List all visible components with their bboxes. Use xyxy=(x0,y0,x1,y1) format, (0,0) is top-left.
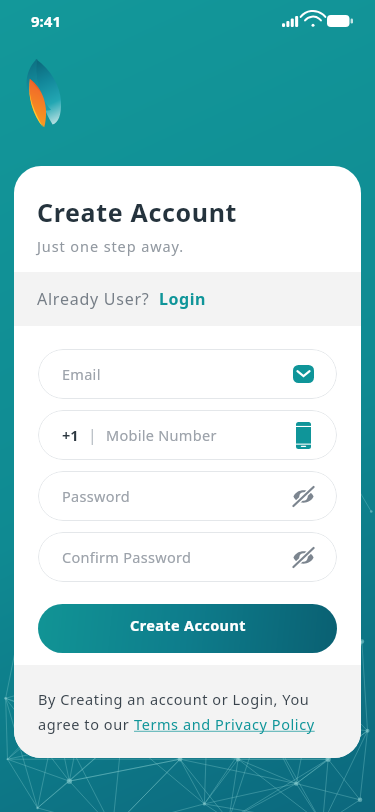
staticText: Email xyxy=(62,364,101,384)
staticText: Just one step away. xyxy=(37,236,185,256)
button[interactable]: Toggle password visibility xyxy=(293,487,314,506)
button[interactable]: Already User? xyxy=(14,272,361,326)
button[interactable]: Toggle password visibility xyxy=(293,548,314,567)
button[interactable]: Terms and Privacy Policy xyxy=(134,714,315,734)
button[interactable]: Mobile number xyxy=(296,422,311,449)
staticText: Create Account xyxy=(37,195,238,229)
staticText: 9:41 xyxy=(31,11,61,31)
staticText: Password xyxy=(62,486,130,506)
staticText: Create Account xyxy=(130,615,246,635)
staticText: +1 xyxy=(62,425,79,445)
staticText: | xyxy=(88,424,97,446)
button[interactable]: +1 xyxy=(38,410,337,460)
button[interactable]: Confirm Password xyxy=(38,532,337,582)
button[interactable]: Password xyxy=(38,471,337,521)
staticText: agree to our xyxy=(38,714,134,734)
staticText: Login xyxy=(159,288,207,310)
button[interactable]: Email xyxy=(38,349,337,399)
staticText: Confirm Password xyxy=(62,547,192,567)
button[interactable]: Email xyxy=(293,365,314,383)
staticText: By Creating an account or Login, You xyxy=(38,689,310,709)
staticText: Mobile Number xyxy=(106,425,217,445)
button[interactable]: Create Account xyxy=(38,604,337,653)
staticText: Already User? xyxy=(37,288,150,310)
